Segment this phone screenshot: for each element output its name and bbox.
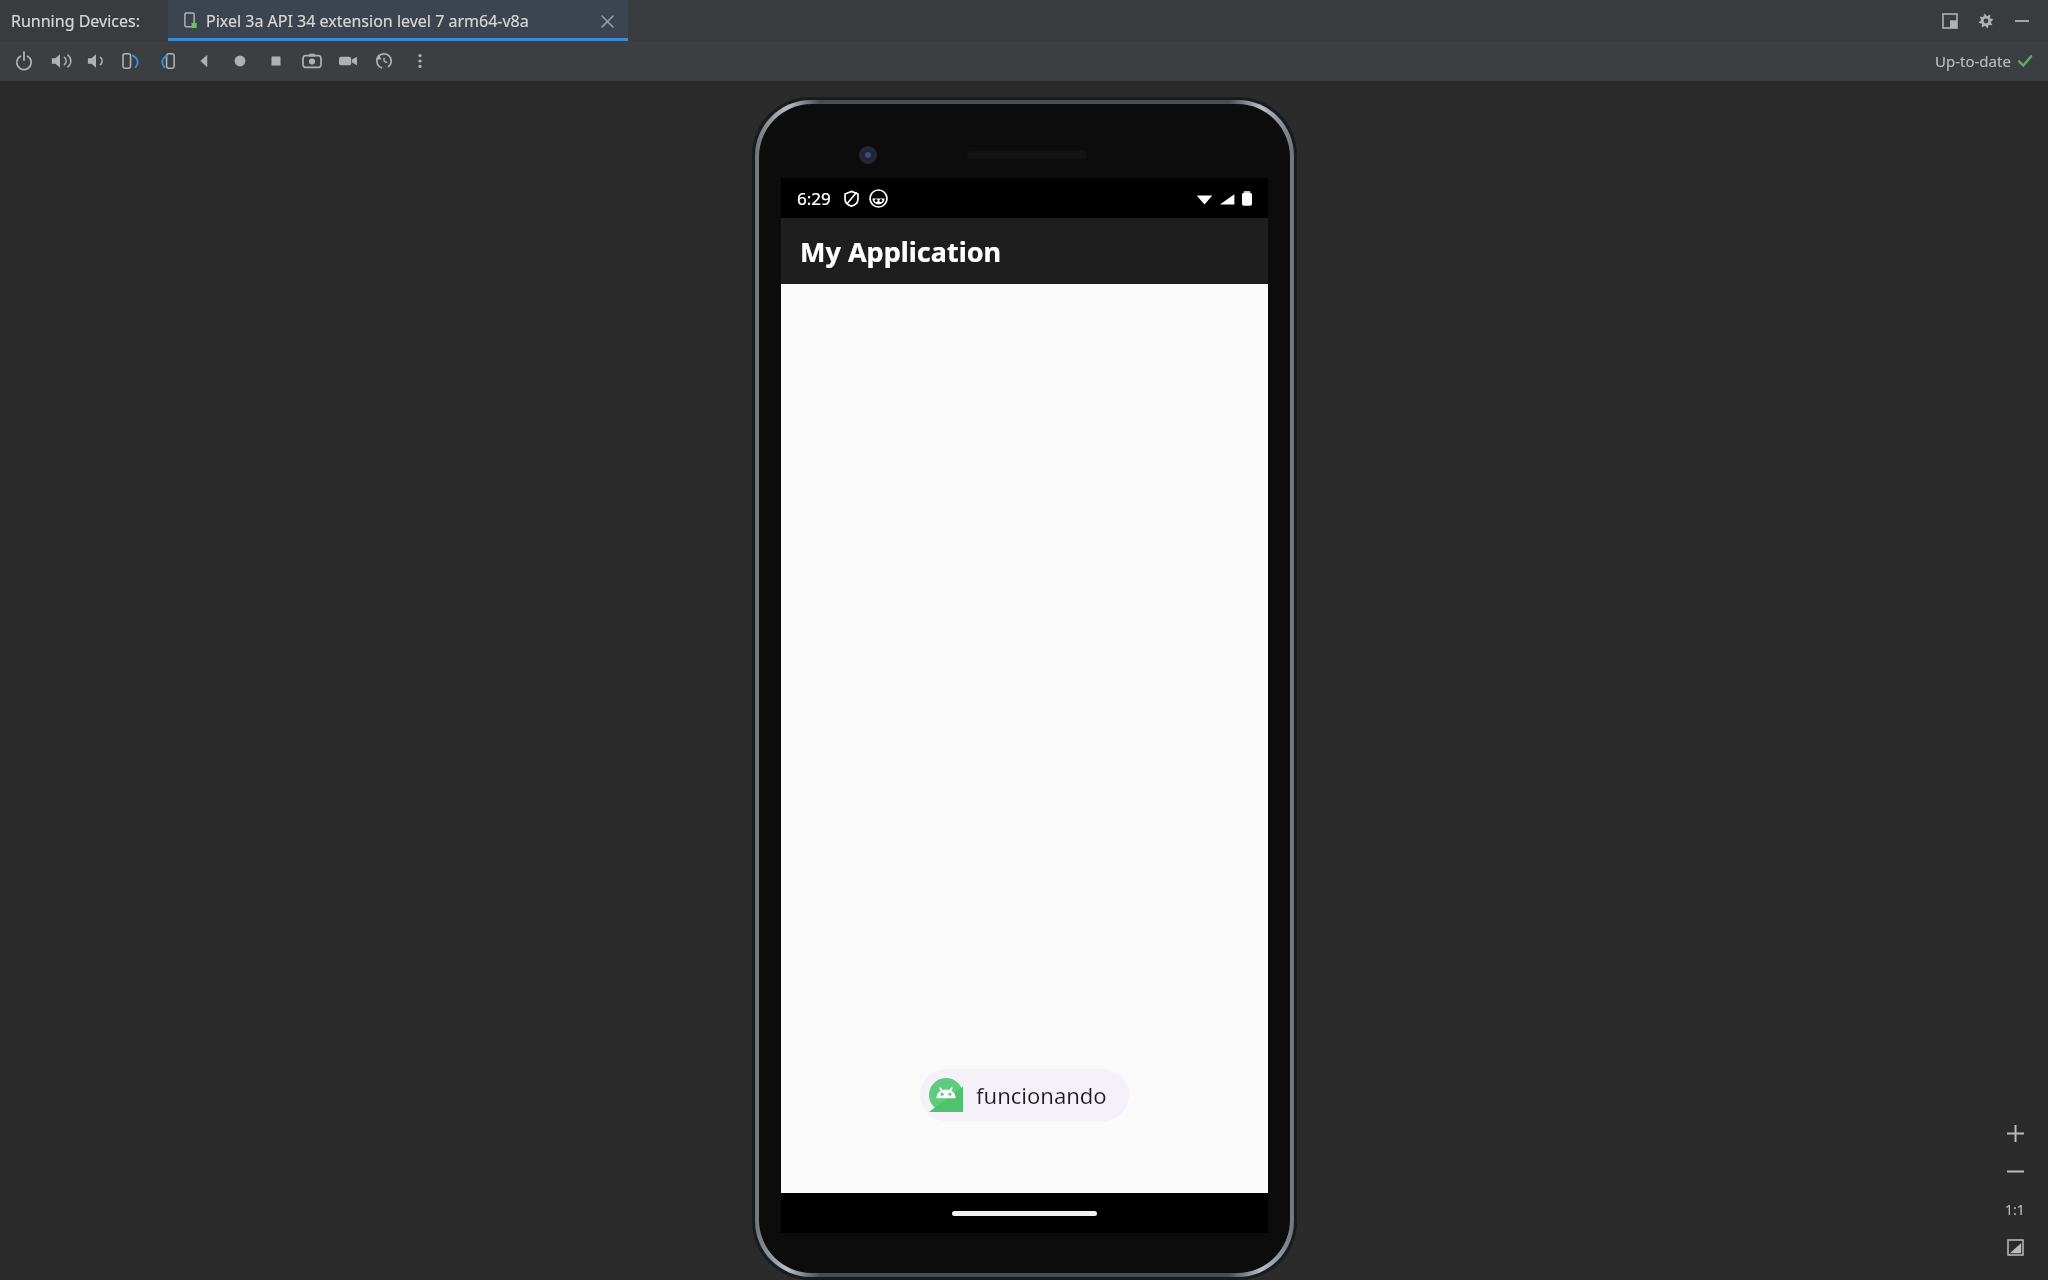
- button[interactable]: Layout: [1938, 9, 1962, 33]
- button[interactable]: Actual size: [1996, 1190, 2034, 1228]
- button[interactable]: Power: [6, 43, 42, 79]
- button[interactable]: Rotate right: [150, 43, 186, 79]
- staticText: Pixel 3a API 34 extension level 7 arm64-…: [206, 10, 529, 32]
- button[interactable]: Zoom in: [1996, 1114, 2034, 1152]
- button[interactable]: My Application: [781, 218, 1268, 284]
- staticText: Up-to-date: [1935, 51, 2011, 71]
- staticText: 6:29: [797, 187, 831, 210]
- button[interactable]: Close tab: [598, 12, 616, 30]
- button[interactable]: More: [402, 43, 438, 79]
- button[interactable]: Zoom out: [1996, 1152, 2034, 1190]
- button[interactable]: Home: [222, 43, 258, 79]
- button[interactable]: Overview: [258, 43, 294, 79]
- button[interactable]: Pixel 3a API 34 extension level 7 arm64-…: [168, 0, 628, 41]
- button[interactable]: Volume down: [78, 43, 114, 79]
- staticText: Running Devices:: [11, 10, 140, 32]
- staticText: 1:1: [2005, 1200, 2025, 1219]
- button[interactable]: Settings: [1974, 9, 1998, 33]
- button[interactable]: History: [366, 43, 402, 79]
- staticText: My Application: [800, 233, 1002, 270]
- button[interactable]: funcionando: [920, 1069, 1129, 1121]
- button[interactable]: Volume up: [42, 43, 78, 79]
- button[interactable]: Fit to screen: [1996, 1228, 2034, 1266]
- staticText: funcionando: [976, 1080, 1107, 1110]
- button[interactable]: Rotate left: [114, 43, 150, 79]
- button[interactable]: Record screen: [330, 43, 366, 79]
- button[interactable]: Screenshot: [294, 43, 330, 79]
- button[interactable]: Minimize: [2010, 9, 2034, 33]
- button[interactable]: Back: [186, 43, 222, 79]
